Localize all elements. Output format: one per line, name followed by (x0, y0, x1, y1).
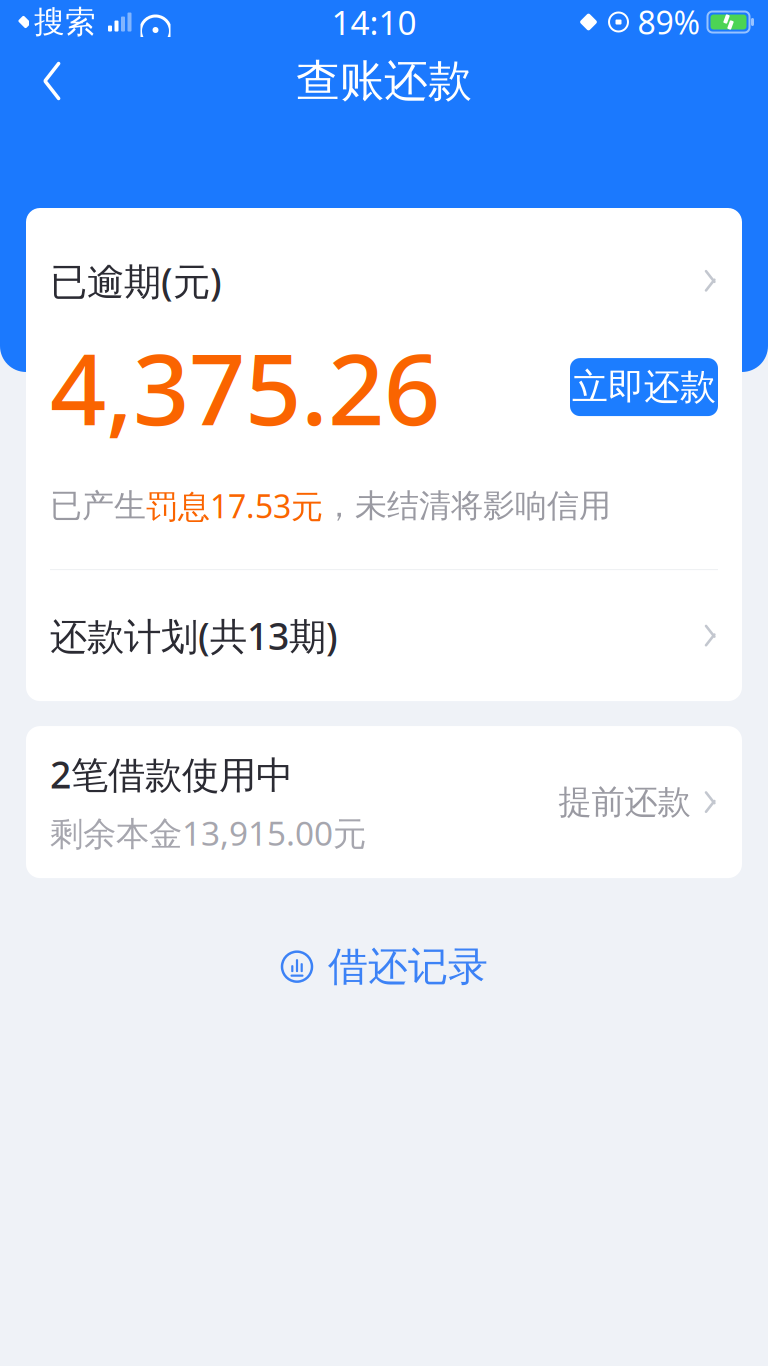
staticText: 还款计划(共13期) (50, 611, 338, 660)
staticText: 已逾期(元) (50, 256, 222, 306)
staticText: 已产生 (50, 486, 146, 525)
staticText: 2笔借款使用中 (50, 749, 293, 799)
staticText: ，未结清将影响信用 (323, 486, 611, 525)
button[interactable]: 借还记录 (260, 932, 508, 1001)
button[interactable]: 立即还款 (570, 358, 718, 416)
staticText: 14:10 (331, 0, 416, 44)
staticText: 4,375.26 (50, 322, 440, 453)
button[interactable]: 已逾期(元) (26, 208, 742, 316)
staticText: 搜索 (34, 3, 96, 41)
button[interactable]: 返回 (22, 51, 82, 111)
staticText: 89% (637, 1, 700, 43)
staticText: 借还记录 (328, 942, 488, 991)
button[interactable]: 还款计划(共13期) (26, 570, 742, 701)
staticText: 罚息17.53元 (146, 485, 323, 527)
staticText: 立即还款 (572, 365, 716, 409)
staticText: 查账还款 (296, 54, 472, 108)
staticText: 提前还款 (558, 782, 690, 822)
button[interactable]: 2笔借款使用中 (26, 726, 742, 878)
staticText: 剩余本金13,915.00元 (50, 811, 366, 855)
